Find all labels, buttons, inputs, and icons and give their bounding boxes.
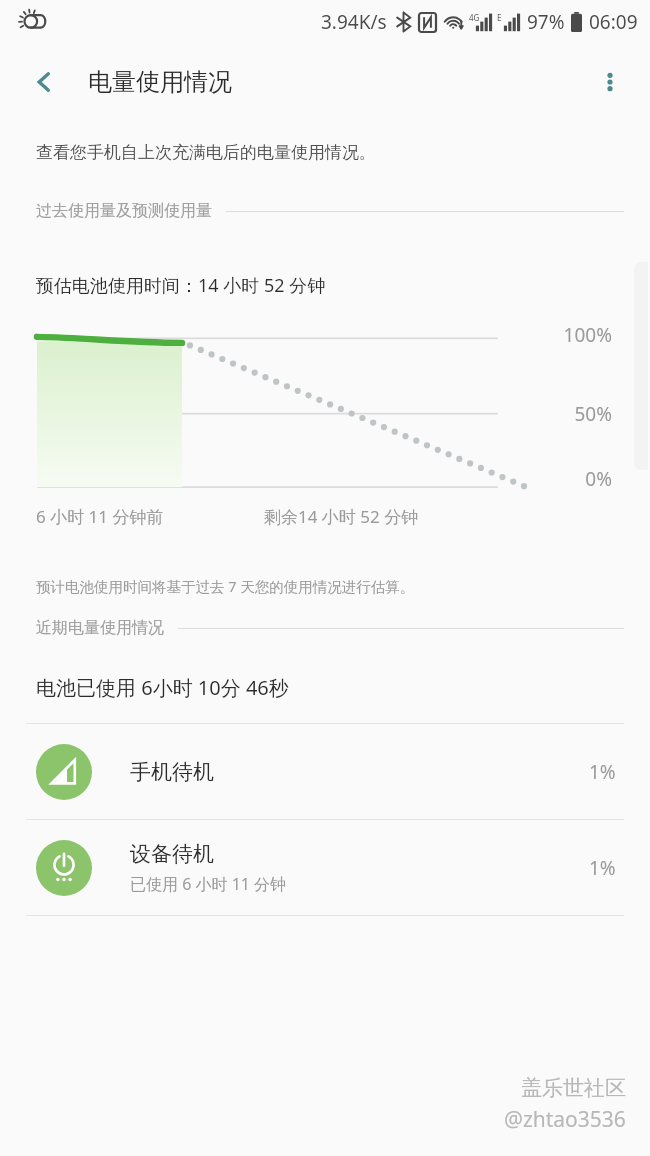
staticText: 1%: [589, 855, 616, 881]
staticText: 预估电池使用时间：14 小时 52 分钟: [36, 273, 326, 298]
staticText: 50%: [574, 401, 612, 427]
staticText: 100%: [563, 322, 612, 348]
button[interactable]: 设备待机: [0, 820, 650, 915]
staticText: 近期电量使用情况: [36, 618, 164, 638]
staticText: 1%: [589, 759, 616, 785]
staticText: 0%: [585, 466, 612, 492]
button[interactable]: Back: [22, 60, 66, 104]
staticText: 查看您手机自上次充满电后的电量使用情况。: [36, 142, 376, 163]
button[interactable]: More options: [586, 58, 634, 106]
staticText: 盖乐世社区: [521, 1075, 626, 1101]
staticText: 06:09: [589, 9, 638, 35]
staticText: 过去使用量及预测使用量: [36, 201, 212, 221]
staticText: 设备待机: [130, 841, 214, 867]
staticText: 手机待机: [130, 759, 214, 785]
staticText: @zhtao3536: [504, 1105, 626, 1134]
staticText: 电池已使用 6小时 10分 46秒: [36, 674, 289, 701]
button[interactable]: 手机待机: [0, 724, 650, 819]
staticText: 4G: [469, 12, 480, 23]
staticText: 3.94K/s: [321, 9, 387, 35]
staticText: 已使用 6 小时 11 分钟: [130, 873, 287, 895]
staticText: 预计电池使用时间将基于过去 7 天您的使用情况进行估算。: [36, 576, 415, 596]
staticText: E: [497, 12, 502, 23]
staticText: 6 小时 11 分钟前: [36, 505, 164, 528]
staticText: 剩余14 小时 52 分钟: [264, 505, 419, 528]
staticText: 电量使用情况: [88, 67, 232, 97]
staticText: 97%: [527, 9, 565, 35]
